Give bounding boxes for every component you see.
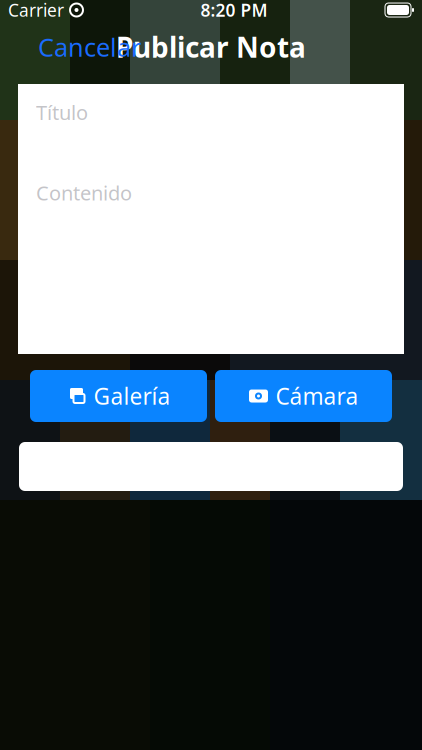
staticText: Cancelar (38, 30, 141, 64)
staticText: Publicar Nota (116, 28, 306, 66)
staticText: Contenido (36, 180, 132, 206)
button[interactable]: Crear (19, 442, 403, 491)
staticText: Carrier (8, 0, 64, 21)
button[interactable]: Cancelar (26, 22, 153, 72)
button[interactable]: Galería (30, 370, 207, 422)
staticText: Cámara (275, 381, 358, 411)
staticText: Título (36, 99, 88, 126)
staticText: Galería (93, 381, 170, 411)
button[interactable]: Cámara (215, 370, 392, 422)
staticText: 8:20 PM (200, 0, 267, 21)
